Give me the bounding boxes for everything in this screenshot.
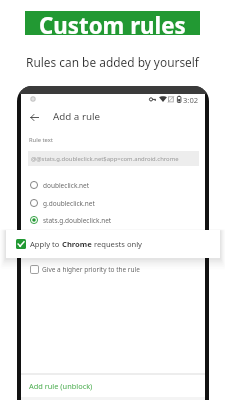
button[interactable]: stats.g.doubleclick.net (21, 211, 205, 229)
staticText: Chrome (62, 239, 92, 249)
staticText: Add rule (unblock) (29, 381, 93, 391)
staticText: doubleclick.net (43, 181, 90, 190)
button[interactable]: @@stats.g.doubleclick.net$app=com.androi… (28, 151, 199, 166)
staticText: stats.g.doubleclick.net (43, 216, 112, 225)
button[interactable]: Apply to (6, 230, 220, 258)
staticText: Give a higher priority to the rule (42, 265, 140, 274)
staticText: Add a rule (53, 110, 101, 123)
staticText: 3:02 (183, 95, 199, 105)
staticText: g.doubleclick.net (43, 199, 95, 208)
button[interactable]: g.doubleclick.net (21, 194, 205, 212)
button[interactable]: Back (21, 105, 44, 128)
staticText: Custom rules (39, 10, 186, 34)
staticText: Apply to (30, 239, 62, 249)
button[interactable]: Give a higher priority to the rule (21, 261, 205, 277)
staticText: requests only (92, 239, 142, 249)
staticText: Rules can be added by yourself (26, 54, 199, 70)
button[interactable]: doubleclick.net (21, 176, 205, 194)
button[interactable]: Add rule (unblock) (21, 374, 205, 397)
staticText: Rule text (29, 136, 53, 144)
staticText: @@stats.g.doubleclick.net$app=com.androi… (31, 155, 179, 163)
